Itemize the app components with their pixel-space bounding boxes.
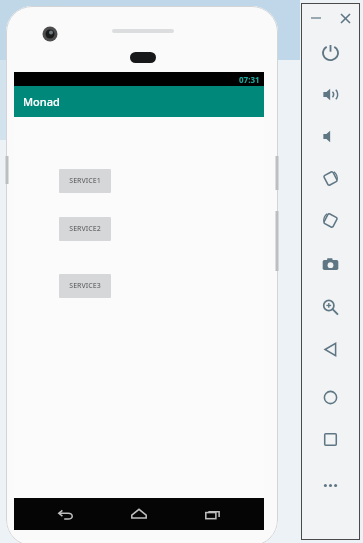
button[interactable]: Home	[318, 385, 343, 410]
button[interactable]: Volume down	[318, 124, 343, 149]
button[interactable]: Back	[318, 337, 343, 362]
staticText: 07:31	[239, 74, 260, 85]
button[interactable]: Recents	[191, 498, 235, 530]
button[interactable]: Back	[44, 498, 88, 530]
staticText: SERVICE3	[69, 281, 101, 291]
staticText: SERVICE1	[69, 176, 101, 186]
button[interactable]: Volume up	[318, 82, 343, 107]
button[interactable]: Rotate left	[318, 166, 343, 191]
button[interactable]: Home	[117, 498, 161, 530]
button[interactable]: Overview	[318, 427, 343, 452]
button[interactable]: Minimize	[305, 7, 327, 29]
button[interactable]: Close	[334, 7, 356, 29]
staticText: SERVICE2	[69, 224, 101, 234]
button[interactable]: Power	[318, 40, 343, 65]
button[interactable]: SERVICE2	[59, 217, 111, 241]
button[interactable]: Rotate right	[318, 208, 343, 233]
button[interactable]: More	[318, 473, 343, 498]
button[interactable]: SERVICE1	[59, 169, 111, 193]
button[interactable]: SERVICE3	[59, 274, 111, 298]
staticText: Monad	[23, 94, 60, 109]
button[interactable]: Zoom	[318, 295, 343, 320]
button[interactable]: Take screenshot	[318, 252, 343, 277]
